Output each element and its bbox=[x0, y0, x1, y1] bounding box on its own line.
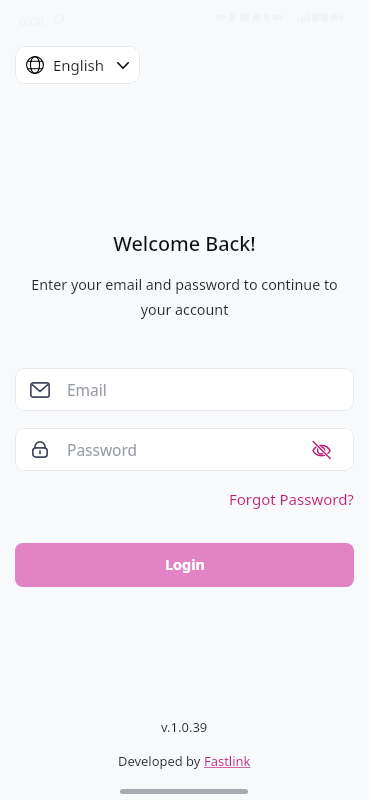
staticText: Enter your email and password to continu… bbox=[26, 275, 343, 319]
staticText: Fastlink bbox=[204, 752, 251, 770]
staticText: Welcome Back! bbox=[113, 230, 256, 257]
staticText: English bbox=[53, 55, 105, 75]
staticText: Login bbox=[165, 555, 205, 575]
button[interactable]: Email bbox=[15, 368, 354, 411]
button[interactable]: Show password bbox=[309, 438, 333, 462]
staticText: Forgot Password? bbox=[229, 489, 354, 509]
staticText: Password bbox=[67, 439, 138, 460]
button[interactable]: Login bbox=[15, 543, 354, 587]
button[interactable]: Fastlink bbox=[204, 752, 251, 770]
staticText: Developed by bbox=[118, 752, 204, 770]
staticText: Email bbox=[67, 379, 107, 400]
button[interactable]: Forgot Password? bbox=[229, 487, 354, 511]
button[interactable]: English bbox=[15, 46, 140, 84]
button[interactable]: Password bbox=[15, 428, 354, 471]
staticText: v.1.0.39 bbox=[161, 718, 208, 736]
